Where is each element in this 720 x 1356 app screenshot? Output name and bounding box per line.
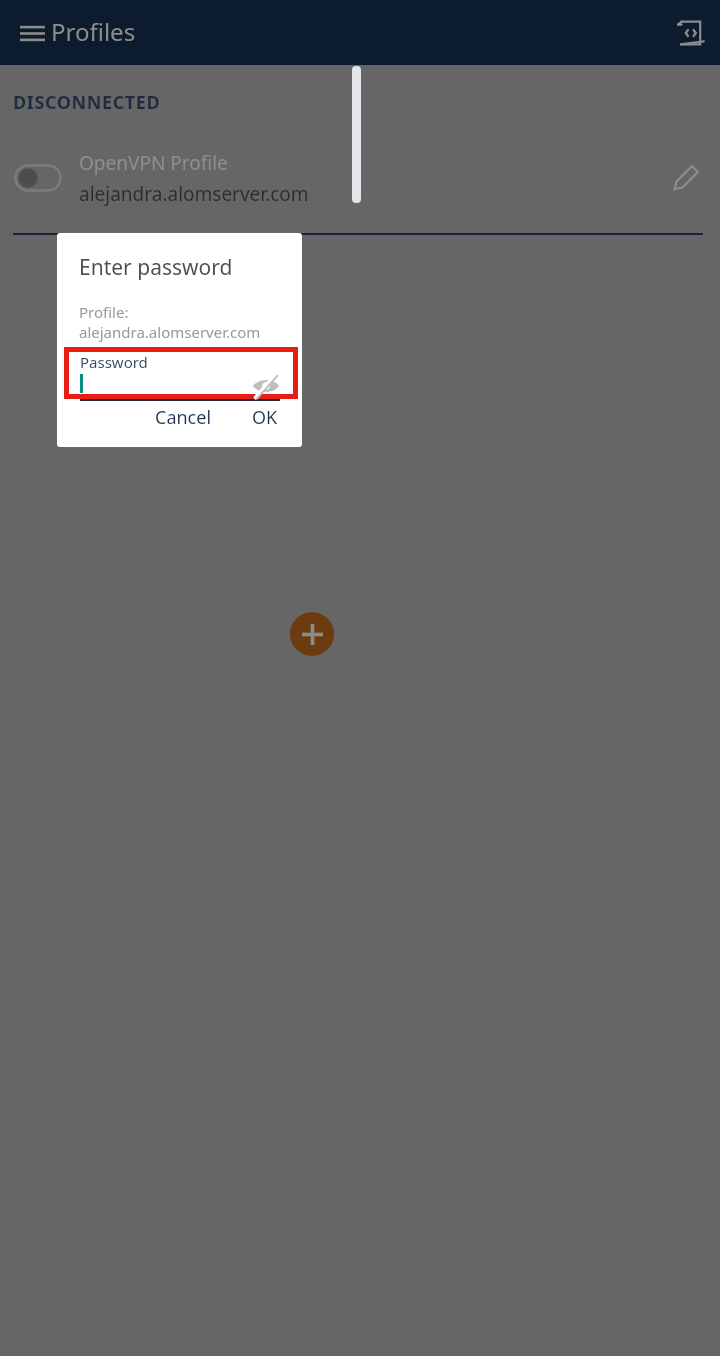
staticText: Enter password: [79, 253, 233, 282]
staticText: Profiles: [51, 15, 136, 48]
button[interactable]: Edit profile: [662, 154, 710, 202]
button[interactable]: Connect profile: [0, 139, 720, 217]
staticText: OK: [252, 405, 278, 429]
staticText: Cancel: [155, 405, 212, 429]
button[interactable]: Open navigation menu: [8, 9, 56, 57]
staticText: Profile: alejandra.alomserver.com: [79, 302, 302, 342]
button[interactable]: Add profile: [290, 612, 334, 656]
button[interactable]: Import profile from source: [666, 9, 714, 57]
button[interactable]: Cancel: [147, 399, 220, 435]
staticText: OpenVPN Profile: [79, 150, 228, 176]
button[interactable]: Show password: [247, 367, 285, 405]
staticText: alejandra.alomserver.com: [79, 181, 309, 207]
staticText: DISCONNECTED: [13, 90, 161, 115]
staticText: Password: [80, 352, 148, 372]
button[interactable]: OK: [244, 399, 286, 435]
button[interactable]: Password: [64, 347, 298, 399]
button[interactable]: Connect profile: [14, 164, 62, 192]
